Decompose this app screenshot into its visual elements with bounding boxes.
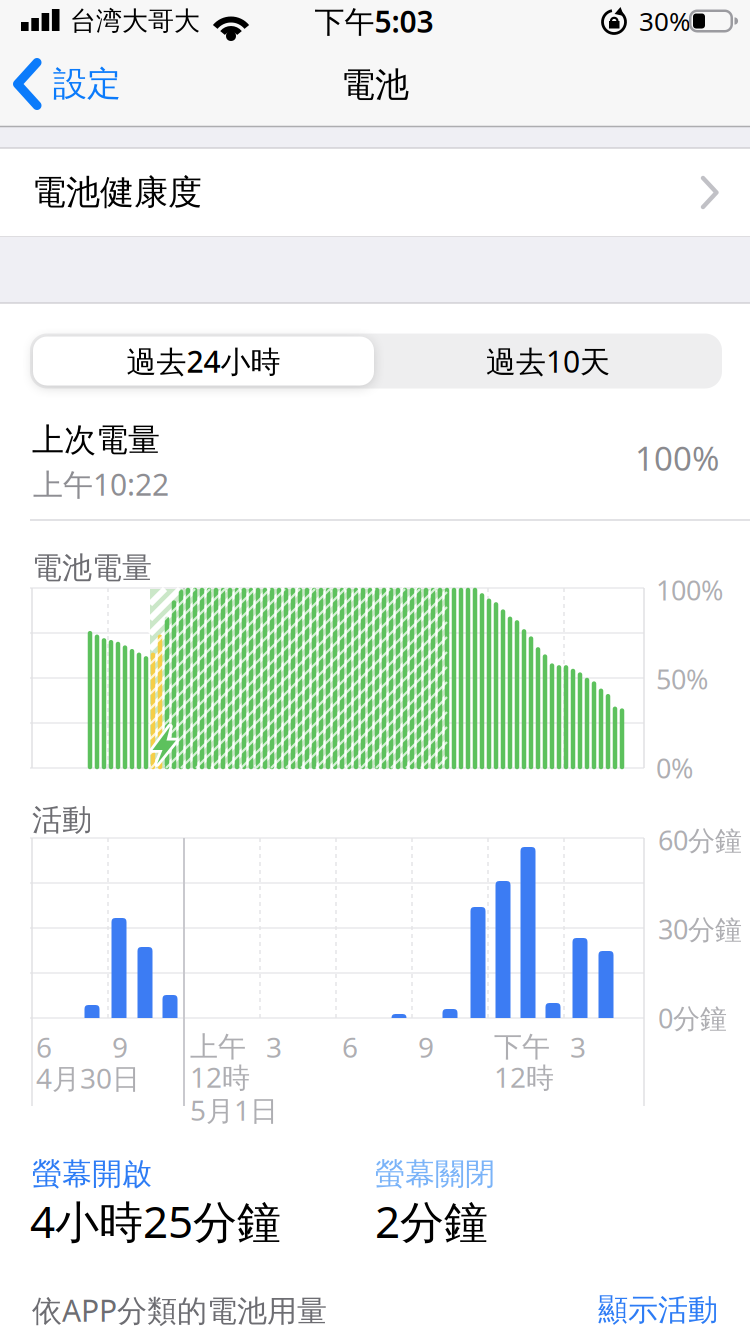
staticText: 上次電量: [32, 420, 160, 460]
button[interactable]: 顯示活動: [518, 1288, 718, 1332]
staticText: 螢幕關閉: [375, 1155, 495, 1193]
staticText: 設定: [53, 63, 121, 105]
staticText: 0分鐘: [658, 1000, 727, 1036]
staticText: 電池健康度: [32, 171, 202, 214]
staticText: 9: [418, 1028, 434, 1066]
staticText: 4小時25分鐘: [30, 1191, 281, 1251]
staticText: 上午10:22: [33, 464, 169, 504]
staticText: 上午: [190, 1029, 246, 1065]
staticText: 0%: [656, 750, 693, 786]
staticText: 台湾大哥大: [70, 5, 200, 37]
staticText: 過去24小時: [126, 341, 280, 381]
staticText: 12時: [190, 1058, 250, 1096]
button[interactable]: 設定: [13, 53, 173, 115]
staticText: 9: [112, 1028, 128, 1066]
staticText: 2分鐘: [375, 1191, 488, 1251]
staticText: 6: [36, 1028, 52, 1066]
staticText: 下午5:03: [314, 1, 433, 41]
staticText: 活動: [32, 801, 92, 839]
button[interactable]: 電池健康度: [0, 149, 750, 236]
staticText: 12時: [494, 1058, 554, 1096]
staticText: 螢幕開啟: [32, 1155, 152, 1193]
staticText: 依APP分類的電池用量: [32, 1290, 327, 1330]
staticText: 100%: [656, 572, 723, 608]
button[interactable]: 過去24小時: [33, 336, 374, 385]
staticText: 電池電量: [32, 549, 152, 587]
staticText: 5月1日: [190, 1091, 278, 1129]
staticText: 顯示活動: [598, 1291, 718, 1329]
staticText: 3: [570, 1028, 586, 1066]
staticText: 60分鐘: [658, 822, 742, 858]
staticText: 100%: [635, 435, 719, 480]
staticText: 下午: [494, 1029, 550, 1065]
staticText: 30%: [639, 3, 691, 39]
staticText: 6: [342, 1028, 358, 1066]
staticText: 50%: [656, 661, 708, 697]
staticText: 3: [266, 1028, 282, 1066]
staticText: 電池: [341, 64, 409, 106]
staticText: 過去10天: [486, 341, 610, 381]
button[interactable]: 過去10天: [377, 336, 718, 385]
staticText: 4月30日: [36, 1059, 140, 1097]
staticText: 30分鐘: [658, 911, 742, 947]
